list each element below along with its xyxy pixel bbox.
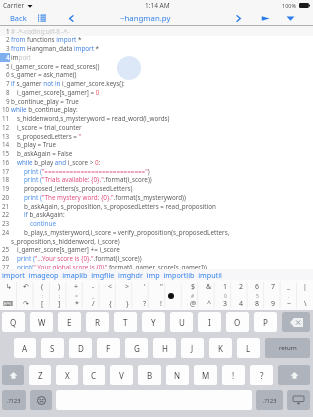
button[interactable]: Files [37, 13, 47, 23]
button[interactable]: - [85, 280, 102, 310]
staticText: ' [144, 282, 146, 292]
staticText: D [78, 343, 84, 354]
button[interactable]: Back [10, 13, 27, 23]
button[interactable]: Shift [2, 365, 24, 385]
staticText: # -*-coding:utf-8 -*- [11, 27, 70, 36]
button[interactable]: D [69, 338, 92, 358]
button[interactable]: ! [222, 365, 245, 385]
button[interactable]: K [209, 338, 232, 358]
button[interactable]: 2 [233, 280, 249, 310]
button[interactable]: + [68, 280, 85, 310]
staticText: [ [41, 299, 44, 309]
staticText: ⌨ [3, 300, 14, 308]
staticText: B [147, 370, 153, 381]
button[interactable]: G [125, 338, 148, 358]
button[interactable]: More symbols [168, 293, 174, 299]
button[interactable]: ) [51, 280, 68, 310]
button[interactable]: L [237, 338, 260, 358]
staticText: ] [58, 299, 61, 309]
staticText: i_gamer_score[s_gamer] = 0 [17, 88, 100, 97]
button[interactable]: 6 [249, 280, 265, 310]
button[interactable]: O [226, 312, 249, 332]
button[interactable]: F [97, 338, 120, 358]
button[interactable]: Backspace [282, 312, 310, 332]
button[interactable]: M [194, 365, 217, 385]
button[interactable]: H [153, 338, 176, 358]
staticText: i_gamer_score[s_gamer] += i_score [17, 245, 120, 254]
button[interactable]: _ [281, 280, 297, 310]
button[interactable]: 1 [217, 280, 233, 310]
button[interactable]: S [41, 338, 64, 358]
button[interactable]: > [119, 280, 136, 310]
button[interactable]: C [83, 365, 105, 385]
button[interactable]: $ [185, 280, 201, 310]
button[interactable]: W [30, 312, 53, 332]
staticText: ↳ [6, 283, 12, 291]
button[interactable]: 7 [265, 280, 281, 310]
staticText: if s_gamer not in i_gamer_score.keys(): [11, 79, 125, 88]
staticText: 21 [2, 202, 10, 211]
staticText: import [11, 53, 32, 62]
staticText: import imageop imaplib imgfile imghdr im… [2, 270, 222, 280]
staticText: 9 [271, 299, 276, 309]
button[interactable]: ' [136, 280, 153, 310]
button[interactable]: X [56, 365, 78, 385]
button[interactable]: .?123 [2, 390, 26, 410]
button[interactable]: ↳ [0, 280, 17, 310]
staticText: = [75, 293, 78, 300]
button[interactable]: Emoji [30, 390, 52, 410]
button[interactable]: Show menu [285, 13, 296, 24]
staticText: while b_play and i_score > 0: [17, 158, 101, 167]
button[interactable]: | [297, 280, 313, 310]
staticText: 20 [2, 193, 10, 202]
button[interactable]: Run [260, 13, 271, 24]
staticText: G [134, 343, 140, 354]
button[interactable] [169, 280, 185, 310]
staticText: V [119, 370, 124, 381]
button[interactable]: Y [142, 312, 165, 332]
button[interactable]: R [86, 312, 109, 332]
staticText: 17 [2, 167, 10, 176]
staticText: P [263, 317, 268, 328]
button[interactable]: .?123 [256, 390, 283, 410]
staticText: 7 [271, 282, 276, 292]
staticText: from functions import * [11, 35, 82, 44]
staticText: 4 [239, 299, 244, 309]
button[interactable]: ? [250, 365, 273, 385]
staticText: print ("============================") [24, 167, 150, 176]
button[interactable]: A [14, 338, 36, 358]
staticText: 25 [2, 245, 10, 254]
staticText: 18 [2, 175, 10, 184]
button[interactable]: N [166, 365, 189, 385]
button[interactable]: T [114, 312, 137, 332]
button[interactable]: B [138, 365, 161, 385]
staticText: M [202, 370, 210, 381]
staticText: 7 [6, 79, 10, 88]
staticText: Carrier [3, 1, 25, 10]
button[interactable]: Shift [278, 365, 310, 385]
button[interactable]: J [181, 338, 204, 358]
button[interactable]: " [153, 280, 169, 310]
button[interactable]: Q [2, 312, 25, 332]
staticText: K [218, 343, 223, 354]
staticText: 2 [6, 35, 10, 44]
button[interactable]: E [58, 312, 81, 332]
staticText: ( [41, 282, 44, 292]
button[interactable]: Z [29, 365, 51, 385]
staticText: Back [10, 13, 27, 23]
button[interactable]: P [254, 312, 277, 332]
button[interactable]: ↶ [17, 280, 34, 310]
button[interactable]: & [201, 280, 217, 310]
button[interactable]: Previous file [66, 13, 77, 24]
button[interactable]: Next file [233, 13, 244, 24]
button[interactable]: < [102, 280, 119, 310]
button[interactable]: Hide keyboard [287, 390, 310, 410]
button[interactable]: ( [34, 280, 51, 310]
staticText: 15 [2, 149, 10, 158]
button[interactable]: V [110, 365, 133, 385]
button[interactable]: U [170, 312, 193, 332]
staticText: . [288, 293, 290, 300]
button[interactable]: return [265, 338, 310, 358]
button[interactable]: I [198, 312, 221, 332]
